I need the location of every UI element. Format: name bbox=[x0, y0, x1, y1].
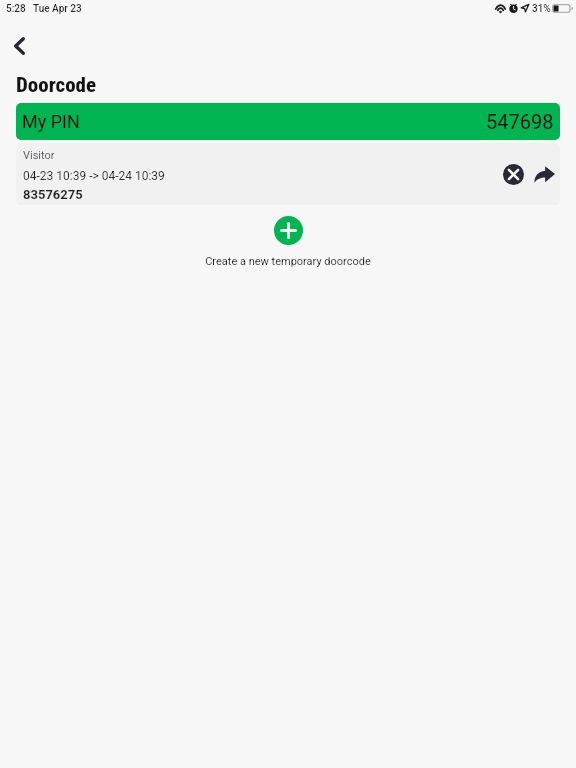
staticText: My PIN bbox=[22, 111, 80, 132]
other: Create a new temporary doorcode bbox=[274, 216, 303, 245]
button[interactable]: Back bbox=[2, 29, 36, 63]
staticText: 83576275 bbox=[23, 187, 83, 202]
button[interactable]: Delete bbox=[496, 157, 530, 191]
staticText: 04-23 10:39 -> 04-24 10:39 bbox=[23, 169, 165, 183]
staticText: Create a new temporary doorcode bbox=[0, 255, 576, 268]
staticText: 547698 bbox=[486, 110, 554, 133]
staticText: Doorcode bbox=[16, 73, 97, 98]
button[interactable]: My PIN bbox=[16, 103, 560, 140]
button[interactable]: Share bbox=[527, 157, 560, 191]
button[interactable]: Create a new temporary doorcode bbox=[0, 210, 576, 252]
staticText: 5:28 bbox=[6, 3, 26, 15]
staticText: 31% bbox=[532, 3, 551, 15]
staticText: Tue Apr 23 bbox=[33, 3, 82, 15]
staticText: Visitor bbox=[23, 149, 55, 162]
button[interactable]: Visitor bbox=[16, 143, 560, 205]
